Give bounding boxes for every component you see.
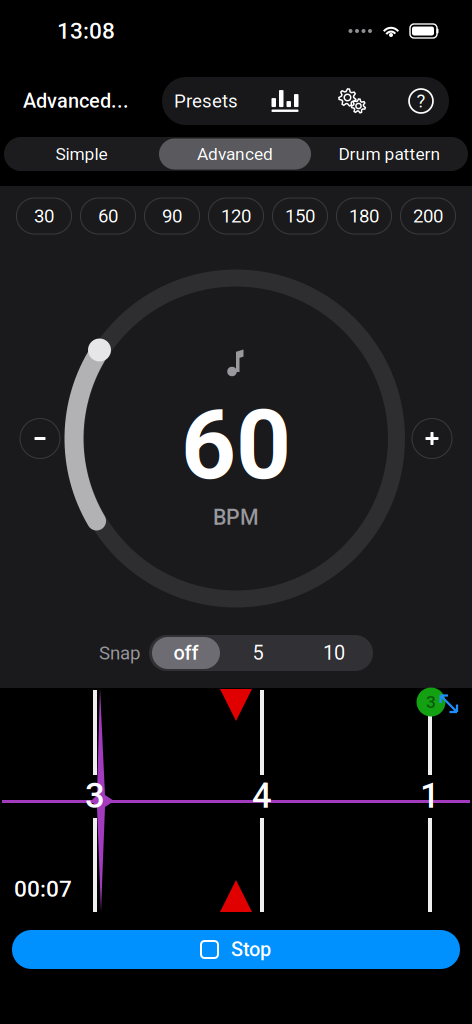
button[interactable]: 180 — [336, 198, 391, 234]
staticText: 5 — [252, 641, 263, 665]
button[interactable]: Settings — [337, 77, 409, 125]
staticText: 150 — [285, 205, 315, 227]
staticText: Stop — [231, 938, 271, 961]
button[interactable]: 120 — [208, 198, 263, 234]
button[interactable]: 200 — [400, 198, 455, 234]
button[interactable]: Drum pattern — [311, 137, 468, 171]
button[interactable]: Advanced — [159, 137, 311, 171]
staticText: 180 — [349, 205, 379, 227]
button[interactable]: 10 — [296, 635, 372, 671]
staticText: 3 — [426, 692, 436, 712]
staticText: 60 — [98, 205, 118, 227]
button[interactable]: Stop — [12, 930, 460, 969]
button[interactable]: Beat accents — [260, 77, 337, 125]
staticText: Snap — [99, 642, 140, 664]
staticText: Advanced... — [23, 89, 129, 113]
button[interactable]: 30 — [16, 198, 71, 234]
button[interactable]: Increase tempo — [412, 418, 452, 458]
staticText: 3 — [85, 776, 105, 816]
button[interactable]: Decrease tempo — [20, 418, 60, 458]
staticText: 10 — [323, 641, 345, 665]
staticText: 60 — [181, 389, 291, 502]
staticText: Simple — [55, 144, 107, 164]
button[interactable]: 150 — [272, 198, 327, 234]
staticText: 120 — [221, 205, 251, 227]
staticText: 90 — [162, 205, 182, 227]
staticText: Drum pattern — [338, 144, 440, 164]
button[interactable]: Presets — [163, 77, 260, 125]
staticText: Presets — [174, 90, 238, 112]
button[interactable]: 60 — [80, 198, 135, 234]
button[interactable]: 5 — [220, 635, 296, 671]
button[interactable]: Help — [409, 77, 448, 125]
staticText: 200 — [413, 205, 443, 227]
staticText: 30 — [34, 205, 54, 227]
staticText: off — [173, 641, 198, 665]
staticText: Advanced — [197, 144, 273, 164]
button[interactable]: off — [150, 635, 220, 671]
button[interactable]: 90 — [144, 198, 199, 234]
staticText: 1 — [420, 776, 440, 816]
staticText: 4 — [252, 776, 272, 816]
button[interactable]: Simple — [4, 137, 159, 171]
staticText: 13:08 — [57, 18, 115, 44]
staticText: ? — [416, 90, 425, 112]
staticText: BPM — [213, 505, 259, 530]
staticText: 00:07 — [14, 876, 72, 902]
